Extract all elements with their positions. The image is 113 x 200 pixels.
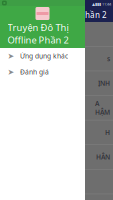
staticText: H	[105, 128, 110, 137]
staticText: 11:44	[102, 1, 111, 7]
staticText: A HẬM	[95, 99, 110, 117]
staticText: Offline Phần 2	[7, 34, 68, 46]
staticText: ➤	[7, 51, 14, 61]
staticText: Truyện Đô Thị	[7, 21, 68, 34]
button[interactable]: ➤	[0, 64, 85, 80]
staticText: ➤	[7, 67, 14, 77]
staticText: Đánh giá	[20, 68, 49, 76]
staticText: Ứng dụng khác	[20, 52, 68, 60]
button[interactable]: ➤	[0, 48, 85, 64]
staticText: HÂN	[96, 153, 110, 161]
staticText: hần 2	[85, 10, 107, 20]
staticText: s	[107, 54, 110, 63]
staticText: ỊNH	[98, 79, 110, 88]
staticText: ▲▮▮▮	[92, 2, 101, 6]
